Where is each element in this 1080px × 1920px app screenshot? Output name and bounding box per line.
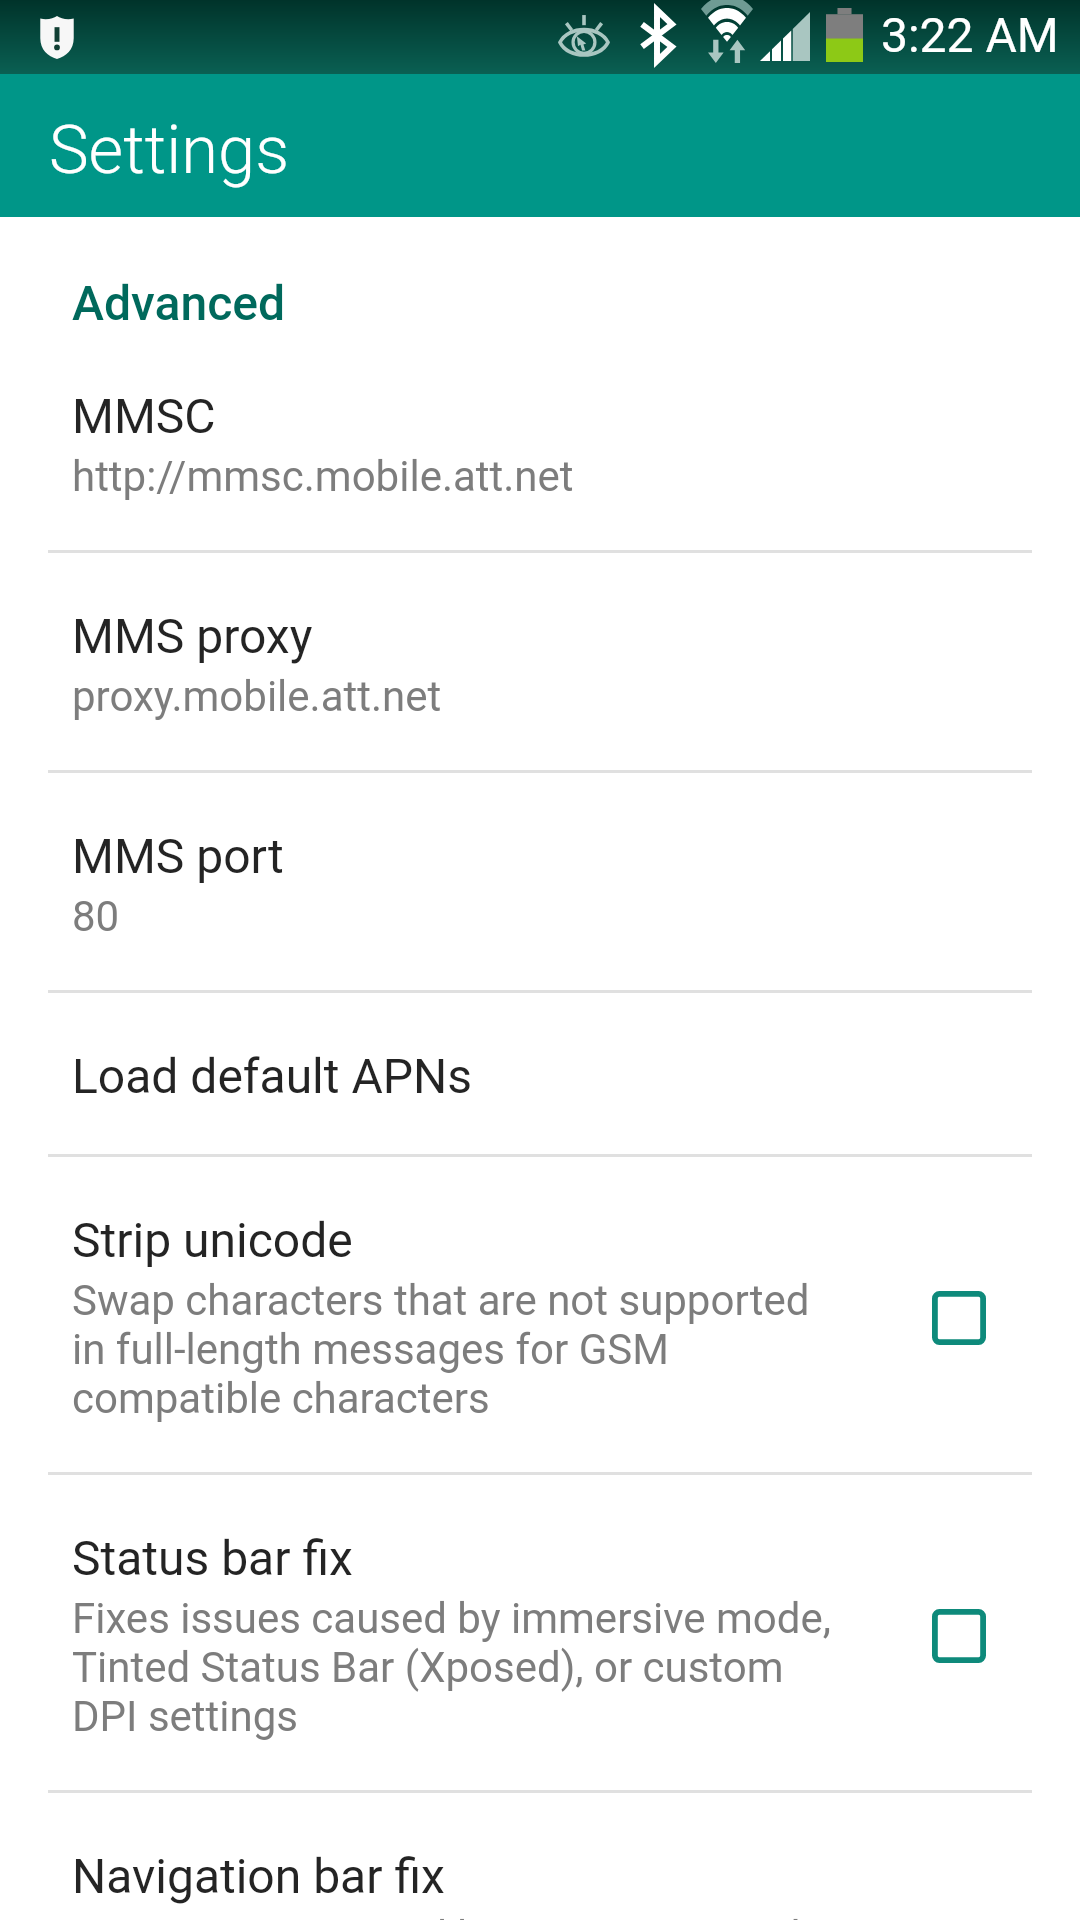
staticText: Swap characters that are not supported i… bbox=[72, 1276, 846, 1423]
staticText: Load default APNs bbox=[72, 1049, 472, 1105]
button[interactable]: Load default APNs bbox=[0, 993, 1080, 1154]
other: Security warning bbox=[38, 16, 76, 59]
staticText: Advanced bbox=[72, 277, 286, 331]
button[interactable]: MMS port bbox=[0, 773, 1080, 990]
staticText: Strip unicode bbox=[72, 1213, 353, 1269]
staticText: MMS port bbox=[72, 829, 284, 885]
staticText: MMSC bbox=[72, 389, 216, 445]
staticText: http://mmsc.mobile.att.net bbox=[72, 452, 574, 501]
button[interactable]: MMS proxy bbox=[0, 553, 1080, 770]
staticText: Fixes issues caused by immersive mode, T… bbox=[72, 1912, 846, 1920]
staticText: 3:22 AM bbox=[881, 8, 1059, 64]
button[interactable]: Toggle Status bar fix bbox=[932, 1609, 986, 1663]
staticText: Settings bbox=[49, 111, 290, 189]
staticText: Fixes issues caused by immersive mode, T… bbox=[72, 1594, 846, 1741]
staticText: 80 bbox=[72, 892, 120, 941]
staticText: Navigation bar fix bbox=[72, 1849, 445, 1905]
button[interactable]: Status bar fix bbox=[0, 1475, 1080, 1790]
staticText: proxy.mobile.att.net bbox=[72, 672, 442, 721]
button[interactable]: Strip unicode bbox=[0, 1157, 1080, 1472]
button[interactable]: MMSC bbox=[0, 333, 1080, 550]
staticText: MMS proxy bbox=[72, 609, 313, 665]
button[interactable]: Toggle Strip unicode bbox=[932, 1291, 986, 1345]
button[interactable]: Navigation bar fix bbox=[0, 1793, 1080, 1920]
staticText: Status bar fix bbox=[72, 1531, 353, 1587]
